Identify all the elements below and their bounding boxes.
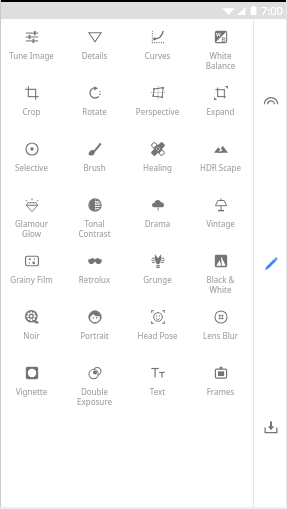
button[interactable]: Black & White xyxy=(189,243,252,299)
button[interactable]: White Balance xyxy=(189,19,252,75)
button[interactable]: Curves xyxy=(126,19,189,75)
button[interactable]: Double Exposure xyxy=(63,355,126,411)
button[interactable]: Retrolux xyxy=(63,243,126,299)
button[interactable]: Healing xyxy=(126,131,189,187)
staticText: Double Exposure xyxy=(63,386,126,408)
staticText: Vignette xyxy=(0,386,63,397)
button[interactable]: Crop xyxy=(0,75,63,131)
staticText: Portrait xyxy=(63,330,126,341)
button[interactable]: Head Pose xyxy=(126,299,189,355)
staticText: Rotate xyxy=(63,106,126,117)
button[interactable]: Tonal Contrast xyxy=(63,187,126,243)
staticText: Vintage xyxy=(189,218,252,229)
staticText: Retrolux xyxy=(63,274,126,285)
staticText: Lens Blur xyxy=(189,330,252,341)
staticText: Crop xyxy=(0,106,63,117)
staticText: Tonal Contrast xyxy=(63,218,126,240)
staticText: Brush xyxy=(63,162,126,173)
staticText: Details xyxy=(63,50,126,61)
button[interactable]: Noir xyxy=(0,299,63,355)
staticText: Grainy Film xyxy=(0,274,63,285)
button[interactable]: Vignette xyxy=(0,355,63,411)
button[interactable]: Tools xyxy=(254,247,287,281)
staticText: 7:00 xyxy=(261,3,283,18)
staticText: Curves xyxy=(126,50,189,61)
staticText: Text xyxy=(126,386,189,397)
staticText: Expand xyxy=(189,106,252,117)
button[interactable]: Details xyxy=(63,19,126,75)
button[interactable]: Brush xyxy=(63,131,126,187)
staticText: Selective xyxy=(0,162,63,173)
staticText: Drama xyxy=(126,218,189,229)
button[interactable]: Glamour Glow xyxy=(0,187,63,243)
button[interactable]: Lens Blur xyxy=(189,299,252,355)
button[interactable]: Frames xyxy=(189,355,252,411)
staticText: HDR Scape xyxy=(189,162,252,173)
staticText: Perspective xyxy=(126,106,189,117)
staticText: Frames xyxy=(189,386,252,397)
button[interactable]: Text xyxy=(126,355,189,411)
button[interactable]: Perspective xyxy=(126,75,189,131)
button[interactable]: Expand xyxy=(189,75,252,131)
button[interactable]: Drama xyxy=(126,187,189,243)
button[interactable]: HDR Scape xyxy=(189,131,252,187)
button[interactable]: Vintage xyxy=(189,187,252,243)
button[interactable]: Tune Image xyxy=(0,19,63,75)
button[interactable]: Rotate xyxy=(63,75,126,131)
staticText: Noir xyxy=(0,330,63,341)
staticText: Healing xyxy=(126,162,189,173)
staticText: Tune Image xyxy=(0,50,63,61)
button[interactable]: Portrait xyxy=(63,299,126,355)
staticText: Glamour Glow xyxy=(0,218,63,240)
button[interactable]: Export xyxy=(254,410,287,444)
button[interactable]: Grainy Film xyxy=(0,243,63,299)
staticText: Grunge xyxy=(126,274,189,285)
staticText: White Balance xyxy=(189,50,252,72)
button[interactable]: Selective xyxy=(0,131,63,187)
button[interactable]: Looks xyxy=(254,85,287,119)
button[interactable]: Grunge xyxy=(126,243,189,299)
staticText: Head Pose xyxy=(126,330,189,341)
staticText: Black & White xyxy=(189,274,252,296)
